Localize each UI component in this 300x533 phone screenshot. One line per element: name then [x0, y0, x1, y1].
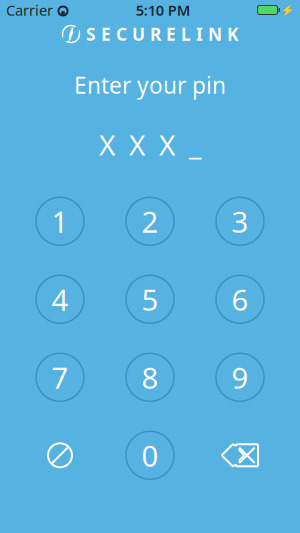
staticText: X: [99, 126, 115, 163]
staticText: 9: [231, 358, 248, 397]
staticText: 5: [141, 280, 158, 319]
staticText: 8: [141, 358, 158, 397]
button[interactable]: 7: [36, 353, 84, 401]
button[interactable]: Delete: [216, 431, 264, 479]
button[interactable]: 4: [36, 275, 84, 323]
staticText: 7: [51, 358, 68, 397]
staticText: 2: [141, 202, 158, 241]
button[interactable]: 1: [36, 197, 84, 245]
button[interactable]: 8: [126, 353, 174, 401]
staticText: 4: [51, 280, 68, 319]
staticText: 6: [231, 280, 248, 319]
staticText: Enter your pin: [74, 70, 226, 100]
staticText: X: [129, 126, 145, 163]
button[interactable]: 3: [216, 197, 264, 245]
staticText: _: [189, 126, 201, 163]
staticText: 0: [141, 436, 158, 475]
staticText: 5:10 PM: [136, 0, 191, 20]
staticText: S E C U R E L I N K: [86, 22, 239, 45]
staticText: X: [159, 126, 175, 163]
button[interactable]: Cancel: [36, 431, 84, 479]
button[interactable]: 2: [126, 197, 174, 245]
staticText: 3: [231, 202, 248, 241]
button[interactable]: 9: [216, 353, 264, 401]
button[interactable]: 0: [126, 431, 174, 479]
staticText: 1: [51, 202, 68, 241]
staticText: Carrier: [6, 0, 53, 20]
staticText: ⚡: [281, 4, 294, 16]
button[interactable]: 6: [216, 275, 264, 323]
button[interactable]: 5: [126, 275, 174, 323]
